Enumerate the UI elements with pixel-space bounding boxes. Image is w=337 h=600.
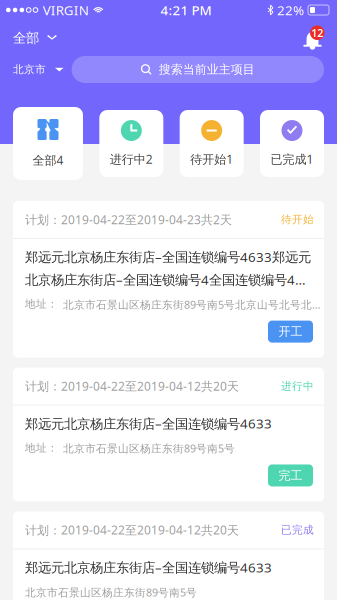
staticText: 4:21 PM [160, 1, 211, 19]
button[interactable]: 北京市 [0, 56, 72, 83]
staticText: 搜索当前业主项目 [159, 62, 255, 77]
staticText: 进行中 [281, 379, 314, 393]
staticText: 北京市石景山区杨庄东街89号南5号 [63, 441, 235, 455]
staticText: 地址： [25, 297, 58, 310]
staticText: 计划：2019-04-22至2019-04-12共20天 [25, 378, 239, 394]
staticText: 地址： [25, 441, 58, 454]
staticText: 北京市 [13, 63, 46, 76]
button[interactable]: 进行中2 [99, 110, 163, 177]
button[interactable]: 计划：2019-04-22至2019-04-12共20天 [13, 368, 324, 501]
staticText: 计划：2019-04-22至2019-04-23共2天 [25, 211, 232, 227]
staticText: 待开始1 [190, 151, 233, 167]
staticText: 郑远元北京杨庄东街店–全国连锁编号4633 [25, 415, 272, 432]
button[interactable]: 待开始1 [180, 110, 244, 177]
button[interactable]: 计划：2019-04-22至2019-04-12共20天 [13, 511, 324, 600]
staticText: 计划：2019-04-22至2019-04-12共20天 [25, 522, 239, 538]
staticText: 进行中2 [110, 151, 153, 167]
staticText: 北京市石景山区杨庄东街89号南5号 [25, 585, 197, 599]
staticText: 开工 [278, 324, 302, 339]
staticText: 已完成1 [270, 151, 313, 167]
staticText: 待开始 [281, 213, 314, 226]
staticText: 已完成 [281, 523, 314, 536]
staticText: 郑远元北京杨庄东街店–全国连锁编号4633 [25, 558, 272, 576]
staticText: 北京市石景山区杨庄东街89号南5号北京山号北号北… [63, 297, 320, 312]
button[interactable]: 已完成1 [260, 110, 324, 177]
staticText: 完工 [278, 468, 302, 483]
staticText: VIRGIN [43, 1, 89, 19]
button[interactable]: 全部 [0, 20, 69, 56]
staticText: 郑远元北京杨庄东街店–全国连锁编号4633郑远元 [25, 248, 311, 266]
staticText: 22% [277, 1, 304, 19]
staticText: 12 [311, 26, 323, 40]
staticText: 全部4 [32, 152, 63, 168]
button[interactable]: 计划：2019-04-22至2019-04-23共2天 [13, 201, 324, 358]
staticText: 北京杨庄东街店–全国连锁编号4全国连锁编号4… [25, 271, 306, 288]
button[interactable]: Notifications [299, 23, 337, 52]
button[interactable]: 搜索当前业主项目 [72, 56, 324, 83]
staticText: 全部 [13, 30, 39, 46]
button[interactable]: 全部4 [13, 107, 83, 180]
